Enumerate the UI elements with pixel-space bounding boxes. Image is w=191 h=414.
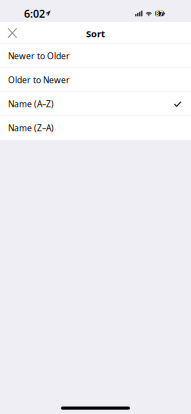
button[interactable]: Newer to Older: [0, 44, 191, 68]
staticText: Newer to Older: [8, 50, 70, 62]
staticText: 6:02: [24, 6, 45, 21]
staticText: 87: [155, 9, 163, 18]
button[interactable]: Older to Newer: [0, 68, 191, 92]
staticText: Older to Newer: [8, 74, 70, 86]
button[interactable]: Name (Z–A): [0, 116, 191, 140]
staticText: Sort: [86, 27, 105, 40]
staticText: Name (A–Z): [8, 98, 54, 110]
staticText: Name (Z–A): [8, 122, 54, 134]
button[interactable]: Close: [0, 22, 24, 44]
button[interactable]: Name (A–Z): [0, 92, 191, 116]
